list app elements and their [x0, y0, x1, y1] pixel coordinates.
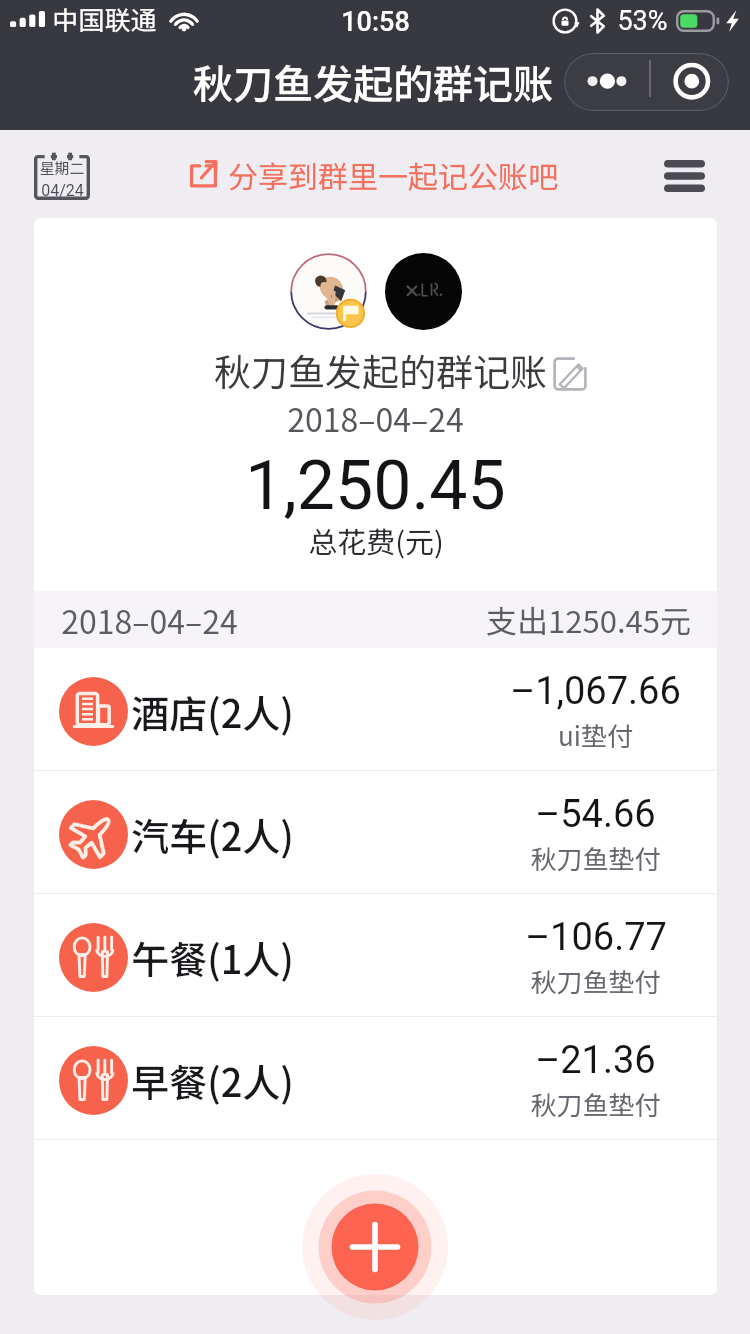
staticText: 分享到群里一起记公账吧 — [228, 153, 558, 196]
staticText: 2018–04–24 — [61, 597, 238, 643]
staticText: –106.77 — [525, 915, 667, 960]
button[interactable]: 酒店(2人) — [34, 648, 717, 770]
button[interactable]: 早餐(2人) — [34, 1017, 717, 1139]
staticText: 秋刀鱼发起的群记账 — [193, 53, 553, 111]
staticText: ui垫付 — [558, 716, 633, 754]
staticText: –54.66 — [535, 792, 656, 837]
staticText: 04/24 — [41, 181, 84, 200]
staticText: 秋刀鱼垫付 — [530, 962, 661, 1000]
staticText: 秋刀鱼垫付 — [530, 839, 661, 877]
staticText: 汽车(2人) — [131, 807, 294, 862]
staticText: –1,067.66 — [510, 669, 681, 714]
staticText: 星期二 — [39, 157, 85, 179]
staticText: 午餐(1人) — [131, 930, 294, 985]
staticText: 早餐(2人) — [131, 1053, 294, 1108]
staticText: 酒店(2人) — [131, 684, 294, 739]
staticText: 总花费(元) — [308, 519, 444, 561]
staticText: 秋刀鱼发起的群记账 — [214, 343, 547, 397]
staticText: 10:58 — [341, 6, 410, 38]
button[interactable]: 分享到群里一起记公账吧 — [190, 153, 558, 196]
button[interactable]: Edit name — [553, 357, 587, 391]
staticText: 1,250.45 — [245, 446, 506, 526]
staticText: 秋刀鱼垫付 — [530, 1085, 661, 1123]
staticText: –21.36 — [535, 1038, 656, 1083]
button[interactable]: Menu — [652, 147, 716, 205]
button[interactable]: 汽车(2人) — [34, 771, 717, 893]
button[interactable]: Add expense — [300, 1172, 450, 1322]
button[interactable]: 午餐(1人) — [34, 894, 717, 1016]
staticText: 支出1250.45元 — [486, 597, 691, 642]
staticText: 中国联通 — [52, 0, 157, 38]
staticText: 53% — [617, 5, 668, 37]
staticText: 2018–04–24 — [287, 395, 464, 441]
button[interactable]: Menu and close — [564, 53, 729, 111]
